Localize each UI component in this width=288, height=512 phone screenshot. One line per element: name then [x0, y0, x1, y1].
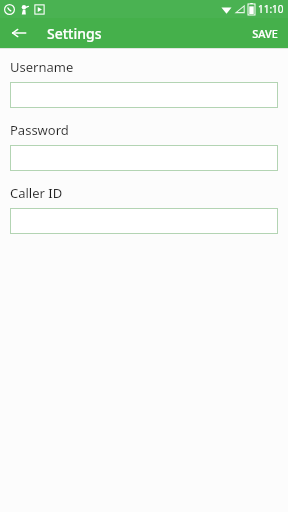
button[interactable]: [10, 82, 278, 108]
staticText: SAVE: [252, 26, 278, 41]
staticText: Caller ID: [10, 184, 63, 202]
staticText: Username: [10, 58, 74, 76]
button[interactable]: [10, 208, 278, 234]
staticText: Settings: [47, 24, 102, 43]
button[interactable]: SAVE: [242, 20, 288, 47]
button[interactable]: Back: [6, 20, 32, 46]
staticText: 11:10: [258, 2, 284, 16]
staticText: Password: [10, 121, 69, 139]
button[interactable]: [10, 145, 278, 171]
